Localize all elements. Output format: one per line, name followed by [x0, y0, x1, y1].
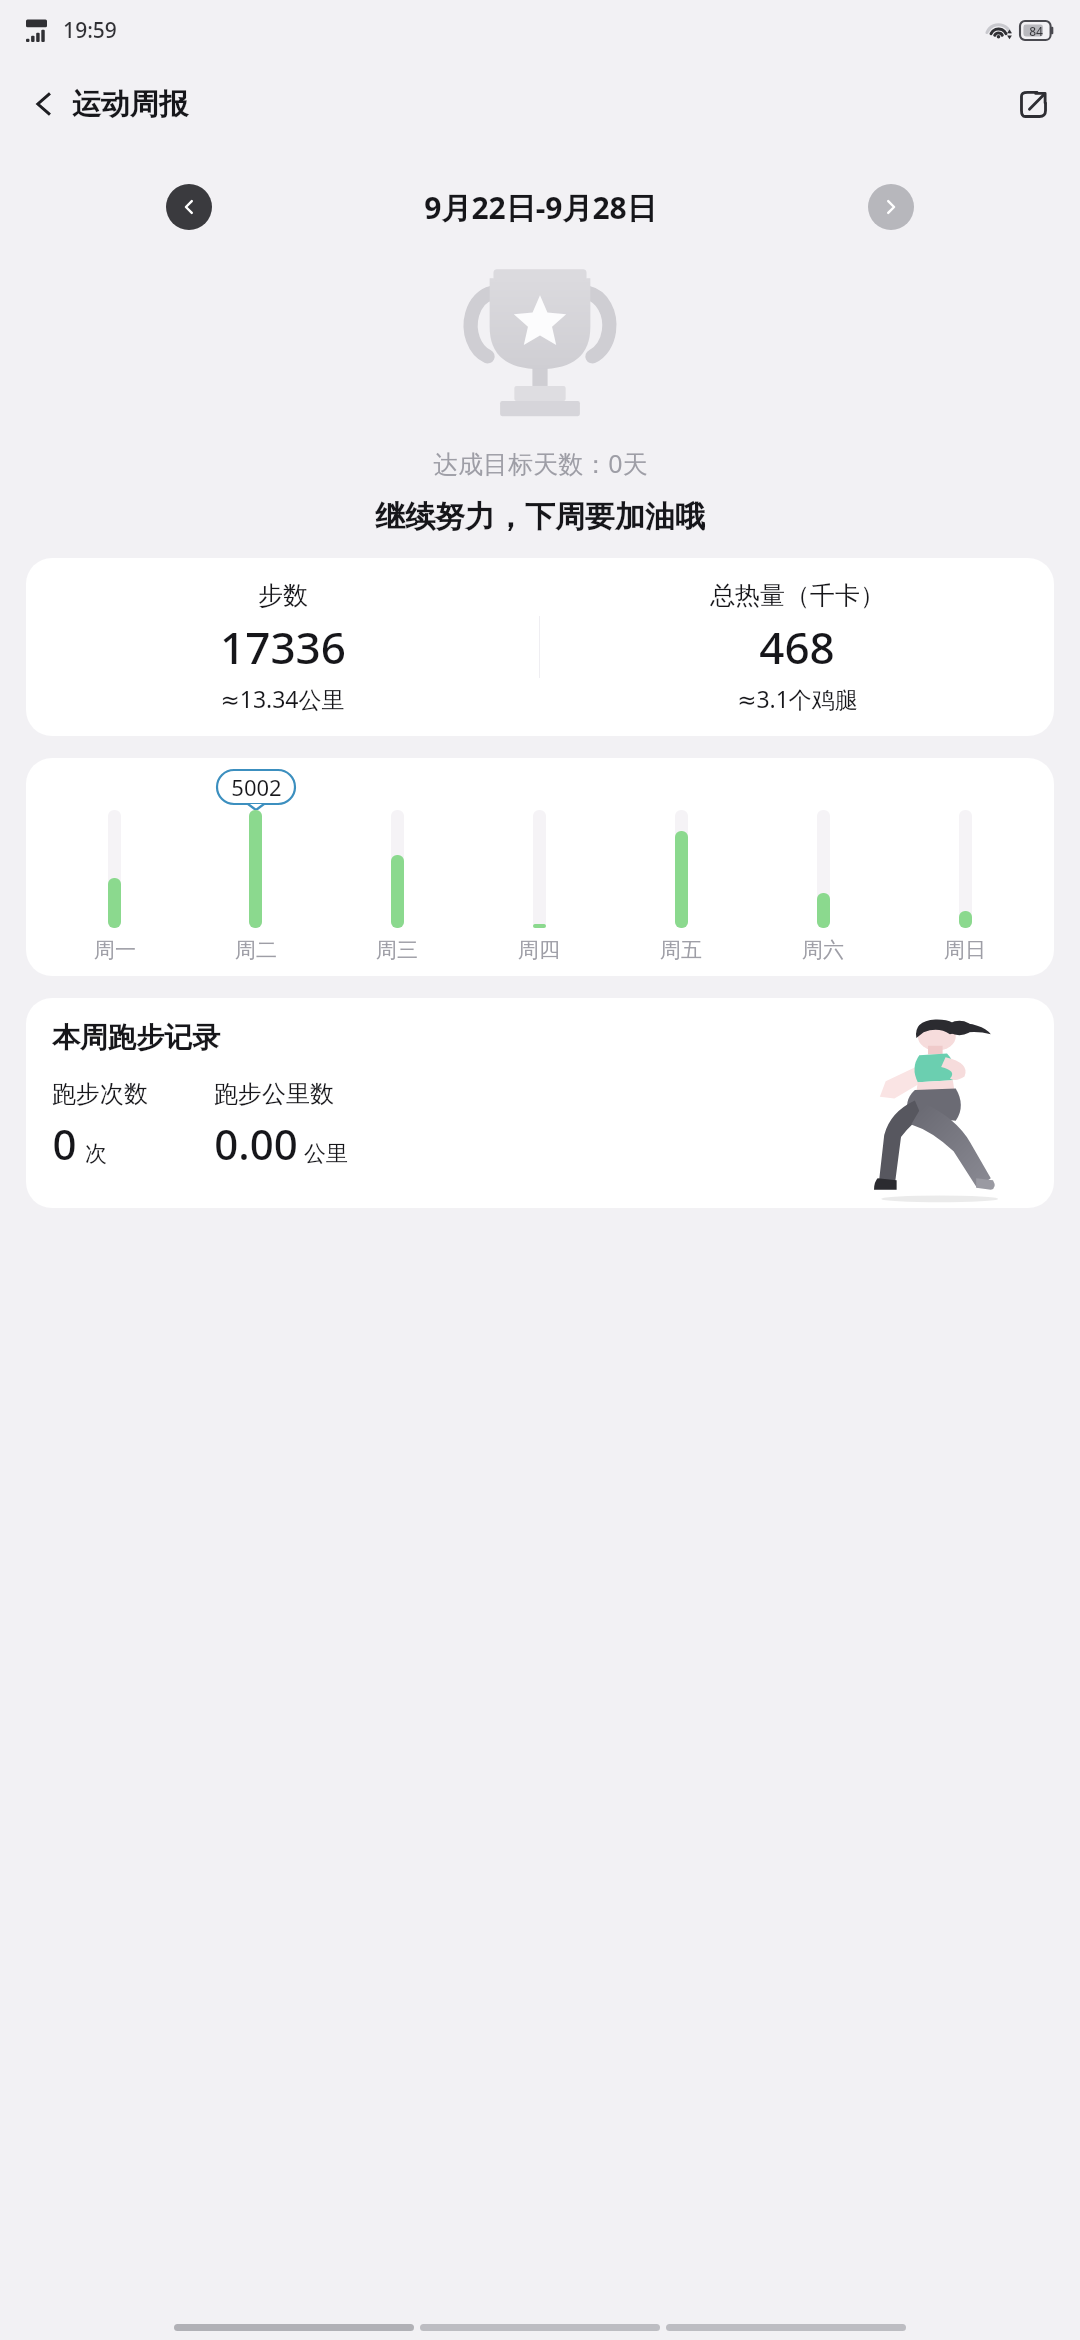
staticText: 0: [52, 1115, 77, 1172]
button[interactable]: Home: [420, 2318, 660, 2336]
staticText: 84: [1029, 23, 1043, 39]
staticText: 周六: [802, 937, 844, 962]
staticText: 本周跑步记录: [52, 1020, 220, 1055]
button[interactable]: Previous week: [166, 184, 212, 230]
staticText: 跑步公里数: [214, 1079, 334, 1109]
staticText: 周三: [376, 937, 418, 962]
button[interactable]: Back: [666, 2318, 906, 2336]
button[interactable]: 步数: [26, 558, 1054, 736]
button[interactable]: Next week: [868, 184, 914, 230]
button[interactable]: Share: [1008, 79, 1058, 129]
staticText: 总热量（千卡）: [710, 580, 885, 611]
staticText: 步数: [258, 580, 308, 611]
staticText: 公里: [304, 1140, 348, 1168]
staticText: 周日: [944, 937, 986, 962]
staticText: 达成目标天数：0天: [433, 446, 648, 480]
button[interactable]: 本周跑步记录: [26, 998, 1054, 1208]
staticText: 17336: [220, 617, 346, 677]
staticText: 周一: [94, 937, 136, 962]
staticText: 468: [759, 617, 835, 677]
button[interactable]: 周一: [26, 758, 1054, 976]
staticText: 跑步次数: [52, 1079, 148, 1109]
staticText: 运动周报: [72, 86, 188, 123]
button[interactable]: Back: [20, 80, 68, 128]
staticText: 周五: [660, 937, 702, 962]
staticText: ≈13.34公里: [220, 683, 345, 714]
staticText: 周二: [235, 937, 277, 962]
staticText: 9月22日-9月28日: [424, 187, 657, 228]
staticText: 19:59: [63, 16, 117, 45]
staticText: 周四: [518, 937, 560, 962]
staticText: 继续努力，下周要加油哦: [375, 498, 705, 536]
staticText: 0.00: [214, 1115, 298, 1172]
button[interactable]: Recents: [174, 2318, 414, 2336]
staticText: 5002: [231, 772, 282, 802]
staticText: ≈3.1个鸡腿: [737, 683, 858, 714]
staticText: 次: [85, 1140, 107, 1168]
